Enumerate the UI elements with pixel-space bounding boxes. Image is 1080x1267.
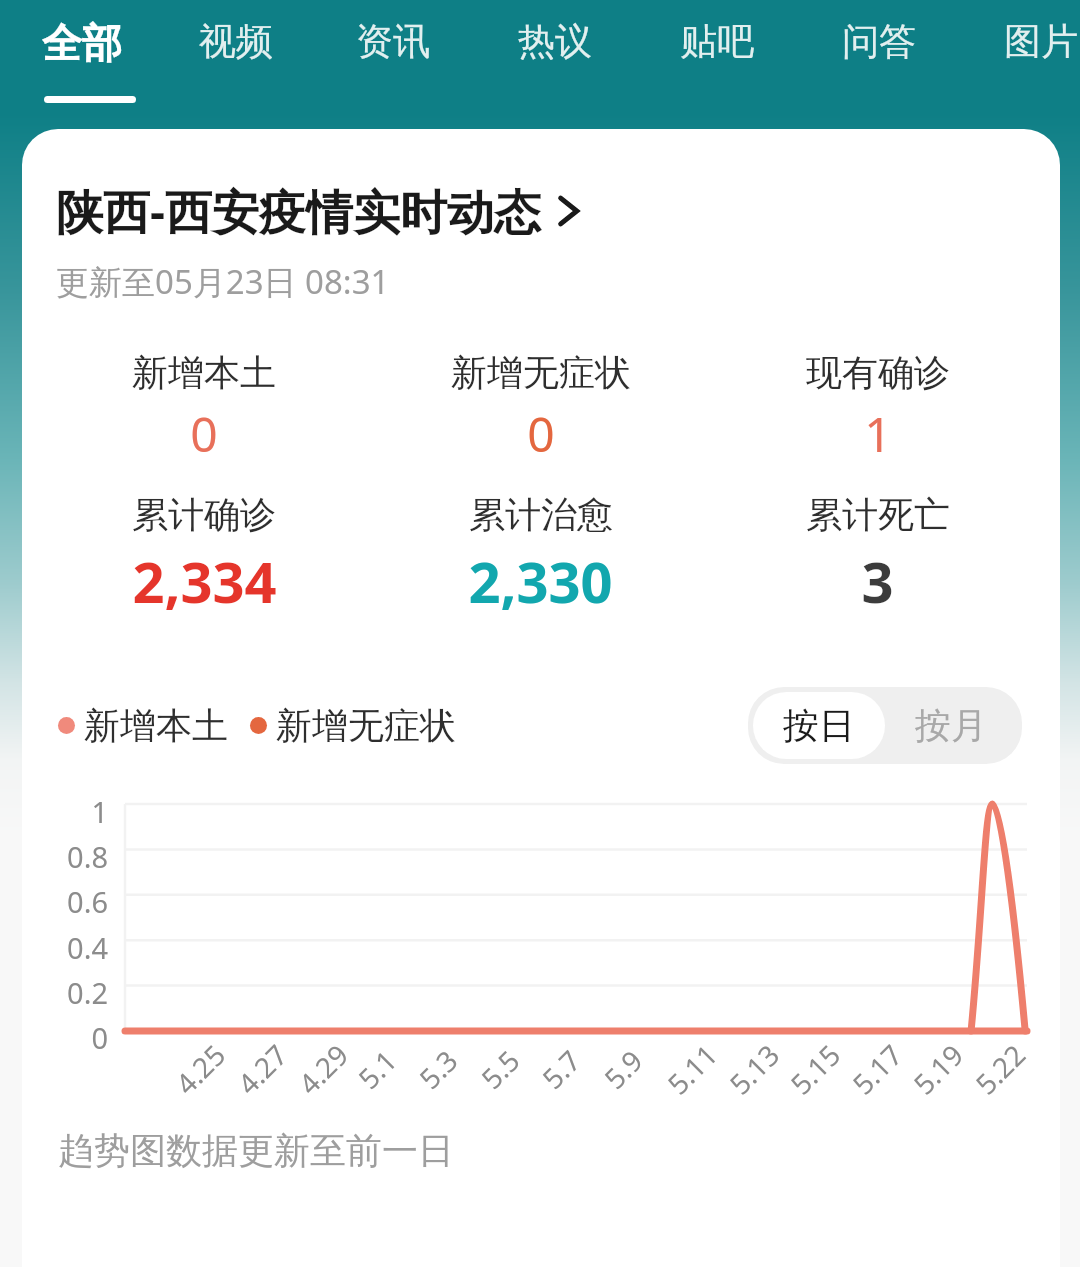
button[interactable]: 贴吧 (676, 10, 758, 73)
staticText: 0.2 (60, 973, 108, 1012)
button[interactable]: 按月 (885, 692, 1017, 759)
button[interactable]: 热议 (514, 10, 596, 73)
staticText: 现有确诊 (806, 350, 950, 395)
staticText: 按日 (783, 703, 855, 748)
staticText: 5.15 (782, 1036, 848, 1102)
staticText: 5.1 (349, 1041, 405, 1097)
button[interactable]: 资讯 (352, 10, 434, 73)
staticText: 5.5 (472, 1041, 528, 1097)
button[interactable]: 累计死亡 (709, 490, 1046, 621)
staticText: 新增无症状 (276, 703, 456, 748)
staticText: 4.29 (290, 1036, 356, 1102)
staticText: 5.22 (967, 1036, 1033, 1102)
staticText: 按月 (915, 703, 987, 748)
staticText: 1 (60, 792, 108, 831)
staticText: 0.6 (60, 882, 108, 921)
staticText: 新增无症状 (451, 350, 631, 395)
staticText: 0.8 (60, 837, 108, 876)
button[interactable]: 视频 (195, 10, 277, 73)
staticText: 0 (190, 401, 218, 466)
staticText: 2,330 (468, 543, 613, 619)
staticText: 图片 (1004, 18, 1078, 65)
button[interactable]: 陕西-西安疫情实时动态 (22, 175, 1060, 247)
staticText: 5.11 (659, 1036, 725, 1102)
staticText: 热议 (518, 18, 592, 65)
staticText: 5.3 (410, 1041, 466, 1097)
staticText: 5.17 (844, 1036, 910, 1102)
button[interactable]: 现有确诊 (709, 348, 1046, 468)
button[interactable]: 问答 (838, 10, 920, 73)
staticText: 陕西-西安疫情实时动态 (56, 179, 542, 243)
staticText: 4.27 (229, 1036, 295, 1102)
staticText: 全部 (42, 18, 122, 68)
staticText: 新增本土 (132, 350, 276, 395)
button[interactable]: 新增无症状 (250, 703, 456, 748)
button[interactable]: 新增本土 (58, 703, 228, 748)
button[interactable]: 新增无症状 (372, 348, 709, 468)
button[interactable]: 按日 (753, 692, 885, 759)
staticText: 0 (527, 401, 555, 466)
staticText: 趋势图数据更新至前一日 (58, 1128, 454, 1173)
button[interactable]: 累计确诊 (36, 490, 372, 621)
staticText: 4.25 (167, 1036, 233, 1102)
staticText: 5.9 (595, 1041, 651, 1097)
staticText: 累计确诊 (132, 492, 276, 537)
staticText: 累计死亡 (806, 492, 950, 537)
staticText: 5.7 (533, 1041, 589, 1097)
staticText: 视频 (199, 18, 273, 65)
staticText: 贴吧 (680, 18, 754, 65)
staticText: 5.19 (905, 1036, 971, 1102)
staticText: 2,334 (132, 543, 277, 619)
button[interactable]: 累计治愈 (372, 490, 709, 621)
button[interactable]: 全部 (38, 10, 126, 76)
staticText: 问答 (842, 18, 916, 65)
staticText: 3 (861, 543, 894, 619)
button[interactable]: 新增本土 (36, 348, 372, 468)
staticText: 0 (60, 1018, 108, 1057)
staticText: 1 (864, 401, 892, 466)
staticText: 新增本土 (84, 703, 228, 748)
staticText: 5.13 (721, 1036, 787, 1102)
staticText: 0.4 (60, 928, 108, 967)
staticText: 更新至05月23日 08:31 (56, 259, 390, 304)
button[interactable]: 图片 (1000, 10, 1080, 73)
staticText: 累计治愈 (469, 492, 613, 537)
staticText: 资讯 (356, 18, 430, 65)
